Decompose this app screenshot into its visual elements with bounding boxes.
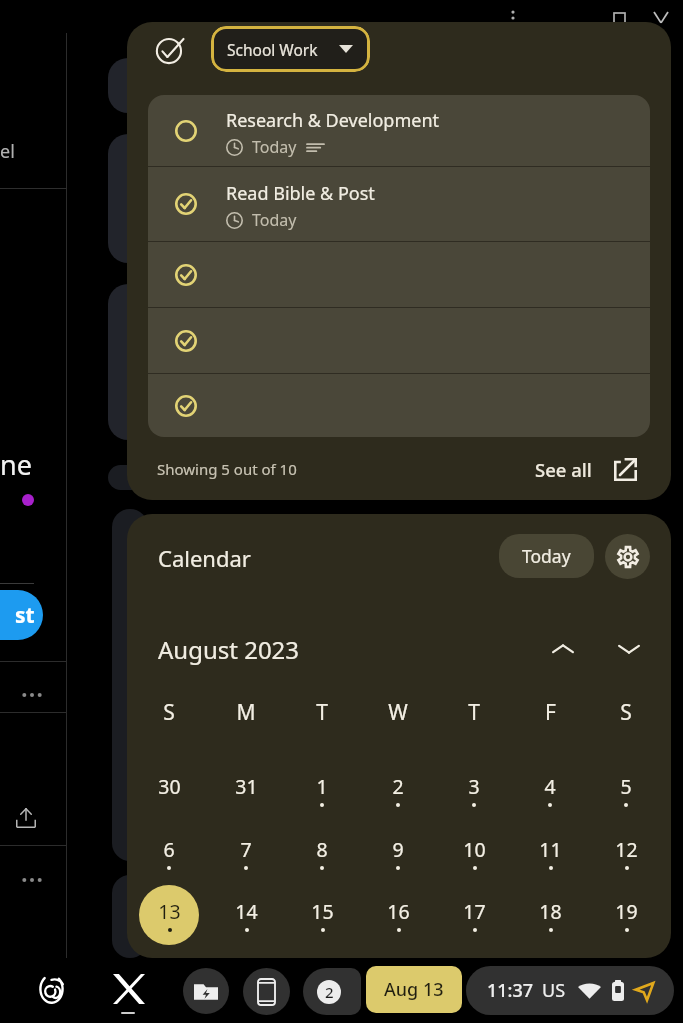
staticText: 7 — [240, 836, 252, 863]
staticText: 17 — [463, 898, 486, 925]
staticText: Aug 13 — [384, 977, 444, 1002]
staticText: T — [316, 698, 328, 727]
staticText: S — [163, 698, 175, 727]
button[interactable]: 14 — [207, 884, 284, 946]
button[interactable]: Tasks — [152, 31, 188, 67]
staticText: ne — [0, 446, 32, 483]
staticText: 4 — [544, 773, 556, 800]
staticText: 3 — [468, 773, 480, 800]
button[interactable]: 6 — [130, 822, 207, 884]
staticText: 13 — [158, 898, 181, 925]
button[interactable]: 16 — [360, 884, 436, 946]
button[interactable]: Research & Development — [148, 95, 650, 166]
staticText: 8 — [316, 836, 328, 863]
button[interactable]: 11:37 — [466, 966, 674, 1015]
button[interactable]: Today — [499, 534, 594, 578]
staticText: Calendar — [158, 543, 251, 573]
staticText: 30 — [158, 773, 181, 800]
button[interactable]: W — [360, 685, 436, 747]
staticText: US — [542, 978, 566, 1003]
staticText: School Work — [227, 39, 318, 60]
staticText: st — [15, 601, 35, 630]
staticText: W — [388, 698, 408, 727]
button[interactable] — [148, 308, 650, 373]
button[interactable]: Files — [183, 968, 229, 1014]
staticText: 2 — [392, 773, 404, 800]
staticText: August 2023 — [158, 633, 300, 666]
button[interactable]: Restore window — [607, 6, 631, 30]
staticText: 10 — [463, 836, 486, 863]
staticText: el — [0, 139, 15, 164]
staticText: 9 — [392, 836, 404, 863]
button[interactable]: 9 — [360, 822, 436, 884]
button[interactable]: 10 — [436, 822, 512, 884]
button[interactable]: 2 — [360, 759, 436, 821]
button[interactable]: School Work — [211, 26, 370, 72]
button[interactable]: M — [207, 685, 284, 747]
button[interactable]: 17 — [436, 884, 512, 946]
button[interactable]: Threads — [31, 967, 75, 1011]
button[interactable]: Close — [648, 7, 674, 33]
staticText: 15 — [311, 898, 334, 925]
button[interactable]: More options — [501, 6, 525, 30]
button[interactable]: T — [436, 685, 512, 747]
staticText: See all — [535, 457, 592, 482]
staticText: 5 — [620, 773, 632, 800]
staticText: Today — [252, 136, 297, 158]
staticText: Read Bible & Post — [226, 181, 375, 206]
button[interactable]: 18 — [512, 884, 588, 946]
staticText: 14 — [235, 898, 258, 925]
button[interactable] — [148, 374, 650, 437]
staticText: F — [545, 698, 556, 727]
button[interactable]: S — [588, 685, 664, 747]
button[interactable]: T — [284, 685, 360, 747]
staticText: Today — [522, 544, 571, 568]
staticText: 11:37 — [487, 978, 534, 1003]
staticText: 18 — [539, 898, 562, 925]
button[interactable]: 5 — [588, 759, 664, 821]
staticText: 6 — [163, 836, 175, 863]
button[interactable]: 19 — [588, 884, 664, 946]
staticText: T — [468, 698, 480, 727]
button[interactable]: Next month — [606, 626, 652, 672]
staticText: 31 — [235, 773, 258, 800]
button[interactable]: 31 — [207, 759, 284, 821]
button[interactable]: Aug 13 — [366, 966, 462, 1013]
button[interactable]: 15 — [284, 884, 360, 946]
staticText: 1 — [316, 773, 328, 800]
button[interactable]: 8 — [284, 822, 360, 884]
button[interactable]: Calendar settings — [605, 534, 650, 579]
button[interactable]: 3 — [436, 759, 512, 821]
staticText: Today — [252, 209, 297, 231]
staticText: 11 — [539, 836, 562, 863]
staticText: 16 — [387, 898, 410, 925]
button[interactable]: S — [130, 685, 207, 747]
button[interactable]: 1 — [284, 759, 360, 821]
button[interactable] — [148, 242, 650, 307]
button[interactable]: Phone — [243, 968, 290, 1015]
button[interactable]: Previous month — [540, 626, 586, 672]
button[interactable]: 11 — [512, 822, 588, 884]
button[interactable]: X — [107, 967, 151, 1011]
button[interactable]: 4 — [512, 759, 588, 821]
button[interactable]: 30 — [130, 759, 207, 821]
button[interactable]: 7 — [207, 822, 284, 884]
staticText: M — [236, 698, 256, 727]
staticText: S — [620, 698, 632, 727]
button[interactable]: 2 notifications — [303, 968, 361, 1015]
staticText: 19 — [615, 898, 638, 925]
button[interactable]: See all — [535, 451, 637, 488]
button[interactable]: Read Bible & Post — [148, 167, 650, 241]
staticText: 12 — [615, 836, 638, 863]
staticText: Showing 5 out of 10 — [157, 459, 297, 479]
button[interactable]: 13 — [130, 884, 207, 946]
staticText: 2 — [325, 982, 334, 1002]
button[interactable]: F — [512, 685, 588, 747]
staticText: Research & Development — [226, 108, 440, 133]
button[interactable]: 12 — [588, 822, 664, 884]
